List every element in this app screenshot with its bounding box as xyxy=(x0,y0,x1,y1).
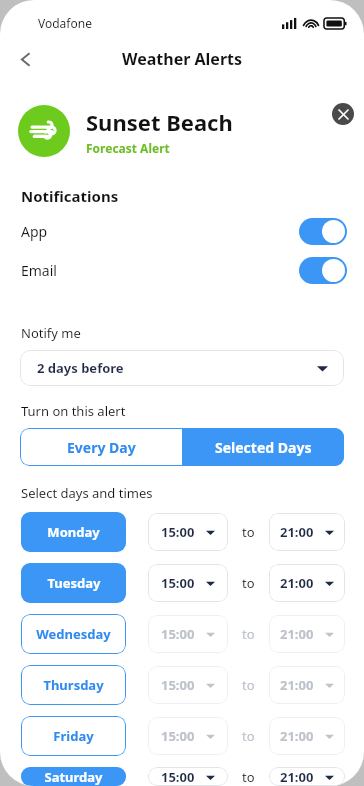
button[interactable]: 21:00 xyxy=(269,767,345,786)
button[interactable]: Close xyxy=(332,103,354,125)
staticText: Wednesday xyxy=(36,625,111,643)
button[interactable]: Email xyxy=(0,251,364,289)
staticText: Sunset Beach xyxy=(86,107,233,137)
button[interactable]: 15:00 xyxy=(148,564,228,602)
staticText: Turn on this alert xyxy=(21,402,126,420)
staticText: Email xyxy=(21,261,57,280)
staticText: App xyxy=(21,222,48,241)
staticText: 21:00 xyxy=(280,574,314,592)
button[interactable]: 15:00 xyxy=(148,513,228,551)
button[interactable]: Every Day xyxy=(20,428,182,466)
button[interactable]: 15:00 xyxy=(148,767,228,786)
button[interactable]: 21:00 xyxy=(269,564,345,602)
button[interactable]: 21:00 xyxy=(269,666,345,704)
staticText: 15:00 xyxy=(161,676,195,694)
button[interactable]: 15:00 xyxy=(148,666,228,704)
staticText: Tuesday xyxy=(47,574,101,592)
staticText: 15:00 xyxy=(161,523,195,541)
button[interactable]: Back xyxy=(6,40,44,78)
staticText: 21:00 xyxy=(280,768,314,786)
button[interactable]: Selected Days xyxy=(182,428,344,466)
staticText: 21:00 xyxy=(280,676,314,694)
button[interactable]: 2 days before xyxy=(20,350,344,386)
staticText: Notify me xyxy=(21,324,81,342)
staticText: to xyxy=(242,727,255,745)
button[interactable]: Monday xyxy=(21,512,126,552)
staticText: Every Day xyxy=(67,438,136,457)
staticText: Weather Alerts xyxy=(122,48,243,70)
staticText: 15:00 xyxy=(161,625,195,643)
staticText: 15:00 xyxy=(161,727,195,745)
staticText: Vodafone xyxy=(38,15,92,31)
button[interactable]: App xyxy=(0,212,364,250)
staticText: Saturday xyxy=(44,768,103,786)
staticText: 15:00 xyxy=(161,574,195,592)
staticText: to xyxy=(242,523,255,541)
staticText: to xyxy=(242,625,255,643)
button[interactable]: Tuesday xyxy=(21,563,126,603)
button[interactable]: 15:00 xyxy=(148,717,228,755)
button[interactable]: Wednesday xyxy=(21,614,126,654)
staticText: to xyxy=(242,676,255,694)
staticText: to xyxy=(242,768,255,786)
staticText: 21:00 xyxy=(280,727,314,745)
staticText: 2 days before xyxy=(37,359,124,377)
button[interactable]: 15:00 xyxy=(148,615,228,653)
button[interactable]: Saturday xyxy=(21,767,126,786)
staticText: to xyxy=(242,574,255,592)
staticText: 21:00 xyxy=(280,523,314,541)
staticText: Select days and times xyxy=(21,484,153,502)
staticText: Thursday xyxy=(43,676,104,694)
staticText: Selected Days xyxy=(215,438,312,457)
button[interactable]: 21:00 xyxy=(269,513,345,551)
staticText: Friday xyxy=(53,727,94,745)
button[interactable]: Thursday xyxy=(21,665,126,705)
button[interactable]: Friday xyxy=(21,716,126,756)
staticText: Monday xyxy=(47,523,100,541)
staticText: 21:00 xyxy=(280,625,314,643)
staticText: Notifications xyxy=(21,186,119,206)
staticText: 15:00 xyxy=(161,768,195,786)
button[interactable]: 21:00 xyxy=(269,615,345,653)
staticText: Forecast Alert xyxy=(86,140,170,156)
button[interactable]: 21:00 xyxy=(269,717,345,755)
